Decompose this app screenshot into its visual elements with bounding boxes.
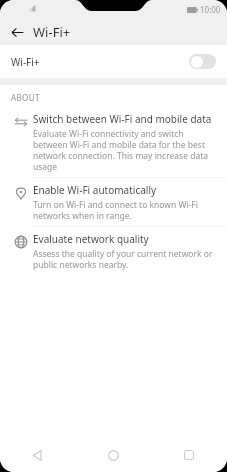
staticText: Enable Wi-Fi automatically: [33, 183, 157, 197]
button[interactable]: Back: [7, 22, 27, 42]
staticText: ABOUT: [11, 92, 40, 103]
staticText: Wi-Fi+: [33, 23, 71, 41]
staticText: Switch between Wi-Fi and mobile data: [33, 112, 212, 126]
button[interactable]: Recents: [151, 438, 227, 472]
staticText: Assess the quality of your current netwo…: [33, 248, 215, 270]
staticText: Turn on Wi-Fi and connect to known Wi-Fi…: [33, 199, 215, 221]
button[interactable]: Back: [0, 438, 75, 472]
staticText: 10:00: [200, 4, 221, 15]
staticText: Wi-Fi+: [11, 55, 40, 69]
other: Wi-Fi+ toggle: [189, 54, 216, 69]
button[interactable]: Switch between Wi-Fi and mobile data: [0, 107, 227, 178]
staticText: Evaluate Wi-Fi connectivity and switch b…: [33, 128, 215, 172]
staticText: Evaluate network quality: [33, 232, 149, 246]
button[interactable]: Home: [75, 438, 151, 472]
button[interactable]: Evaluate network quality: [0, 227, 227, 275]
button[interactable]: Wi-Fi+: [0, 45, 227, 78]
button[interactable]: Enable Wi-Fi automatically: [0, 178, 227, 227]
